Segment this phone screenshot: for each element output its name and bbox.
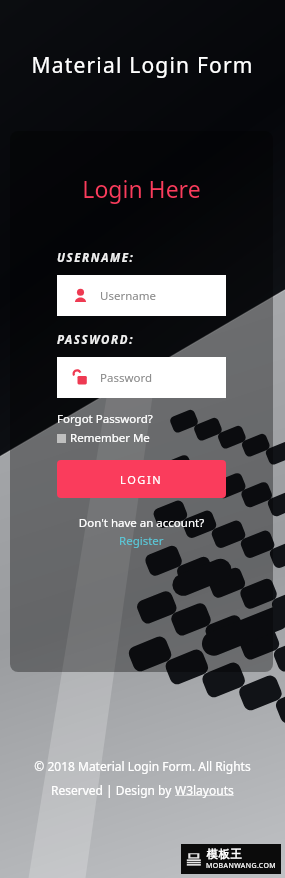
button[interactable]: Username field: [57, 275, 226, 316]
button[interactable]: Password field: [57, 357, 226, 398]
staticText: Username: [100, 288, 156, 304]
button[interactable]: Forgot Password?: [57, 411, 153, 427]
staticText: Password: [100, 370, 153, 386]
button[interactable]: W3layouts: [175, 782, 234, 798]
staticText: Reserved | Design by: [51, 782, 175, 798]
button[interactable]: LOGIN: [57, 460, 226, 498]
staticText: Don't have an account?: [57, 515, 226, 531]
staticText: Remember Me: [70, 430, 150, 446]
staticText: MOBANWANG.COM: [206, 861, 277, 871]
staticText: 模板王: [206, 847, 242, 861]
staticText: LOGIN: [120, 472, 163, 487]
button[interactable]: Remember Me: [57, 430, 150, 446]
staticText: Material Login Form: [31, 51, 254, 80]
other: mobanwang.com watermark: [185, 847, 277, 871]
staticText: © 2018 Material Login Form. All Rights: [34, 758, 251, 774]
staticText: Login Here: [10, 173, 273, 204]
button[interactable]: Register: [119, 533, 164, 549]
staticText: PASSWORD:: [57, 332, 135, 348]
staticText: USERNAME:: [57, 250, 135, 266]
